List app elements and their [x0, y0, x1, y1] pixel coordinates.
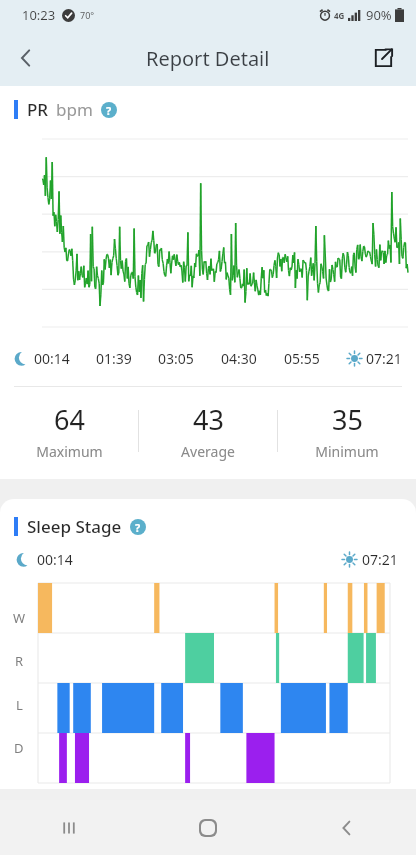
- staticText: 4G: [334, 10, 345, 21]
- button[interactable]: PR: [14, 98, 416, 121]
- staticText: D: [14, 739, 24, 757]
- staticText: 03:05: [158, 349, 194, 368]
- staticText: Report Detail: [146, 45, 270, 72]
- staticText: R: [15, 652, 24, 670]
- staticText: W: [13, 609, 26, 627]
- staticText: 01:39: [96, 349, 132, 368]
- staticText: PR: [27, 98, 49, 121]
- staticText: Sleep Stage: [27, 515, 122, 538]
- staticText: ?: [135, 520, 141, 535]
- staticText: Minimum: [315, 442, 379, 461]
- staticText: 10:23: [22, 6, 56, 24]
- staticText: Maximum: [36, 442, 103, 461]
- staticText: 90%: [366, 6, 392, 24]
- button[interactable]: 35: [278, 401, 416, 461]
- staticText: 00:14: [34, 349, 70, 368]
- staticText: 05:55: [284, 349, 320, 368]
- staticText: 70°: [80, 9, 95, 21]
- staticText: 64: [54, 401, 85, 438]
- button[interactable]: Recents: [0, 800, 138, 855]
- button[interactable]: Help: [101, 102, 117, 118]
- staticText: 35: [332, 401, 363, 438]
- staticText: 07:21: [362, 550, 398, 569]
- staticText: Average: [181, 442, 235, 461]
- staticText: 00:14: [37, 550, 73, 569]
- button[interactable]: Help: [130, 519, 146, 535]
- button[interactable]: Home: [138, 800, 277, 855]
- button[interactable]: Back: [277, 800, 416, 855]
- button[interactable]: Share: [360, 35, 406, 81]
- staticText: 07:21: [366, 349, 402, 368]
- staticText: 04:30: [221, 349, 257, 368]
- staticText: bpm: [56, 98, 93, 121]
- button[interactable]: Back: [0, 32, 52, 84]
- button[interactable]: Sleep Stage: [14, 515, 416, 538]
- staticText: 43: [193, 401, 224, 438]
- staticText: ?: [106, 103, 112, 118]
- staticText: L: [16, 696, 23, 714]
- button[interactable]: 43: [139, 401, 277, 461]
- button[interactable]: 64: [0, 401, 138, 461]
